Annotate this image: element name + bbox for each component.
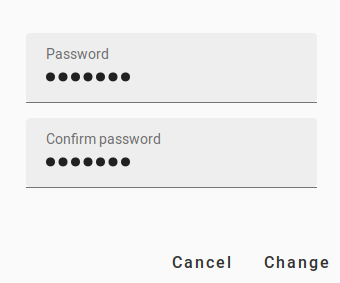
staticText: Cancel xyxy=(172,253,231,272)
button[interactable]: Cancel xyxy=(164,243,239,282)
staticText: Change xyxy=(264,253,329,272)
staticText: Confirm password xyxy=(46,131,161,147)
staticText: Password xyxy=(46,46,109,62)
button[interactable]: Change xyxy=(256,243,337,282)
